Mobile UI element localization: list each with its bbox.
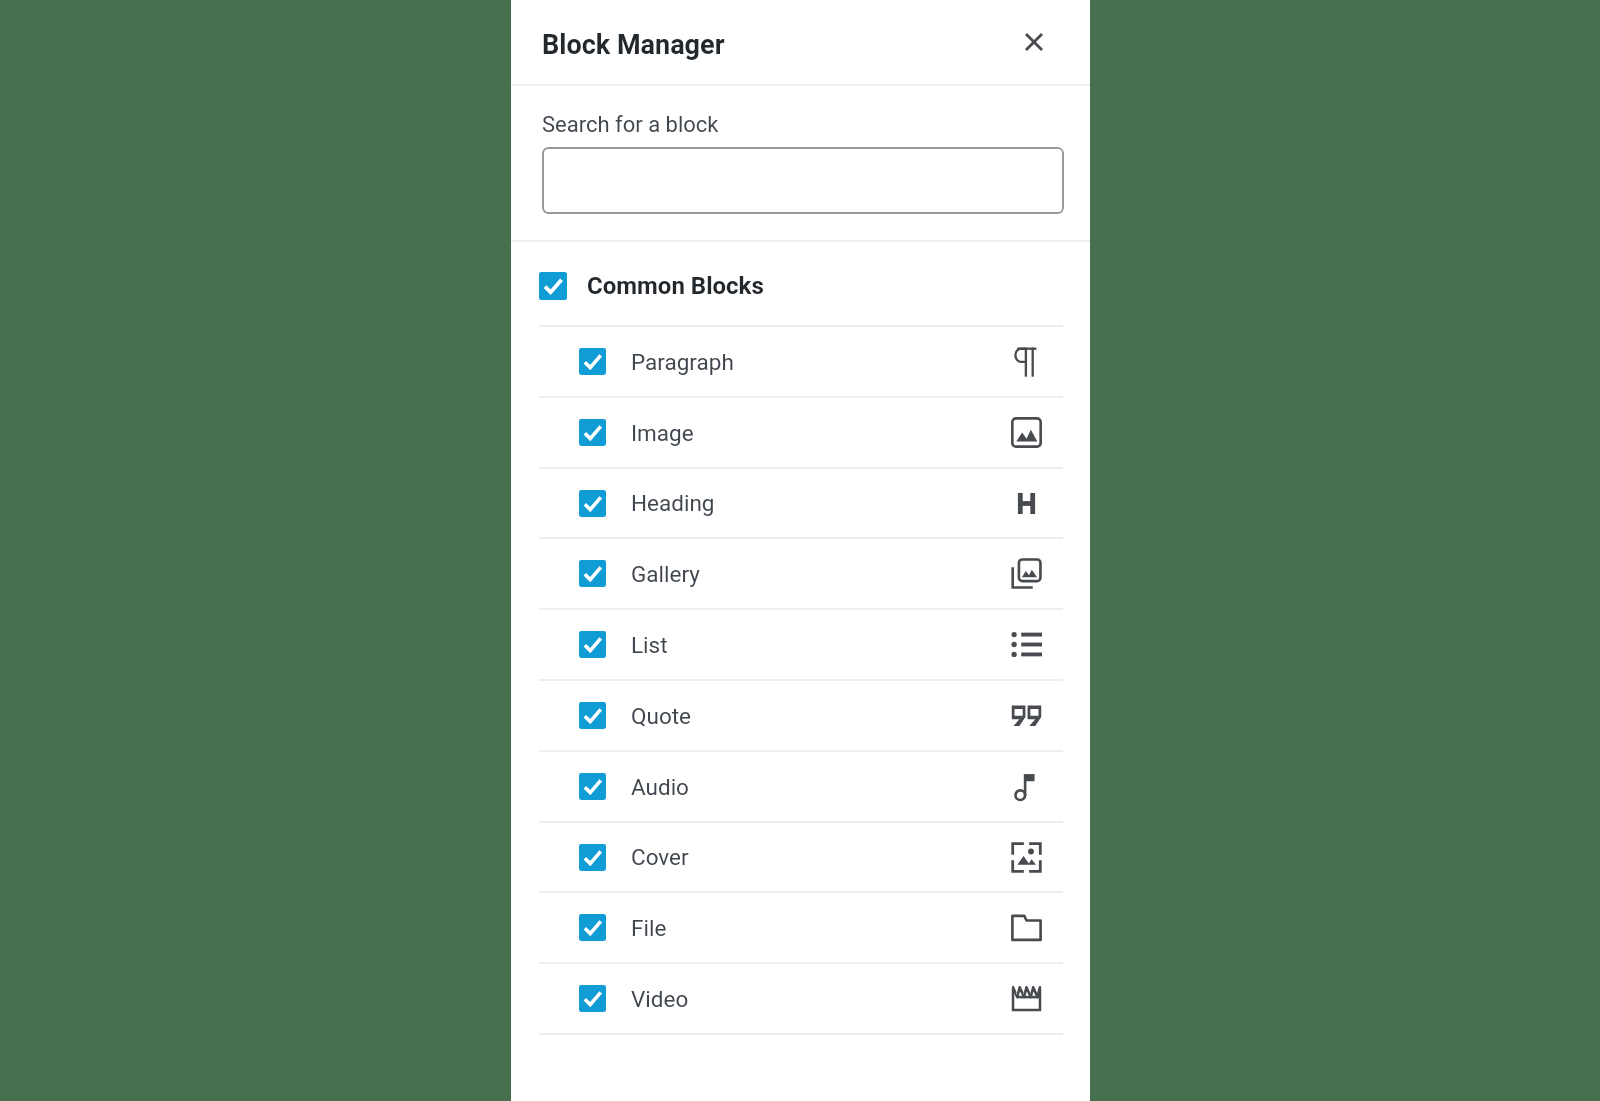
staticText: Cover bbox=[631, 844, 689, 870]
staticText: Quote bbox=[631, 703, 692, 729]
button[interactable]: Image bbox=[511, 398, 1090, 467]
button[interactable]: Gallery bbox=[511, 539, 1090, 608]
button[interactable]: File bbox=[511, 893, 1090, 962]
button[interactable]: Close bbox=[1012, 20, 1056, 64]
staticText: Audio bbox=[631, 774, 689, 800]
button[interactable] bbox=[542, 147, 1064, 214]
staticText: Gallery bbox=[631, 561, 700, 587]
staticText: Heading bbox=[631, 490, 715, 516]
staticText: Block Manager bbox=[542, 29, 725, 61]
staticText: Paragraph bbox=[631, 349, 734, 375]
button[interactable]: Audio bbox=[511, 752, 1090, 821]
button[interactable]: Common Blocks bbox=[511, 242, 1090, 325]
staticText: File bbox=[631, 915, 667, 941]
staticText: Common Blocks bbox=[587, 272, 764, 300]
button[interactable]: List bbox=[511, 610, 1090, 679]
staticText: Video bbox=[631, 986, 689, 1012]
button[interactable]: Video bbox=[511, 964, 1090, 1033]
button[interactable]: Quote bbox=[511, 681, 1090, 750]
staticText: List bbox=[631, 632, 668, 658]
staticText: Search for a block bbox=[542, 112, 719, 138]
button[interactable]: Heading bbox=[511, 469, 1090, 537]
button[interactable]: Cover bbox=[511, 823, 1090, 891]
staticText: Image bbox=[631, 420, 694, 446]
button[interactable]: Paragraph bbox=[511, 327, 1090, 396]
